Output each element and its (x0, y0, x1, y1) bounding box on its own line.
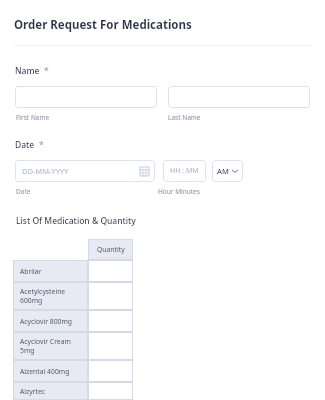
button[interactable]: Acyclovir 800mg (13, 310, 88, 332)
button[interactable] (88, 260, 133, 282)
staticText: Hour Minutes (158, 187, 200, 196)
staticText: HH : MM (170, 166, 199, 176)
staticText: Name (15, 65, 40, 77)
button[interactable] (15, 86, 157, 108)
button[interactable]: Acyclovir Cream 5mg (13, 332, 88, 360)
staticText: * (44, 65, 49, 77)
staticText: Acetylcysteine 600mg (20, 287, 66, 305)
button[interactable]: Acetylcysteine 600mg (13, 282, 88, 310)
staticText: DD-MM-YYYY (22, 166, 69, 176)
staticText: Alzyrtec (20, 387, 46, 396)
staticText: Quantity (97, 245, 125, 254)
staticText: Last Name (168, 113, 201, 122)
button[interactable]: Quantity (88, 239, 133, 260)
button[interactable]: Alzyrtec (13, 382, 88, 400)
staticText: Order Request For Medications (14, 17, 192, 33)
button[interactable]: HH : MM (163, 160, 206, 182)
button[interactable] (88, 310, 133, 332)
staticText: Date (16, 187, 31, 196)
button[interactable]: Alzental 400mg (13, 360, 88, 382)
staticText: Alzental 400mg (20, 367, 70, 376)
staticText: Acyclovir 800mg (20, 317, 73, 326)
button[interactable] (88, 360, 133, 382)
staticText: Abrilar (20, 267, 42, 276)
staticText: First Name (16, 113, 50, 122)
button[interactable] (88, 382, 133, 400)
staticText: * (39, 139, 44, 151)
button[interactable]: DD-MM-YYYY (15, 160, 155, 182)
staticText: Date (15, 139, 35, 151)
button[interactable] (168, 86, 310, 108)
button[interactable]: Abrilar (13, 260, 88, 282)
button[interactable] (88, 282, 133, 310)
button[interactable]: AM (212, 160, 243, 182)
other: Select AM or PM (232, 168, 238, 174)
staticText: List Of Medication & Quantity (16, 215, 136, 227)
other: Open calendar (140, 167, 149, 176)
staticText: AM (217, 166, 229, 176)
button[interactable] (88, 332, 133, 360)
staticText: Acyclovir Cream 5mg (20, 337, 71, 355)
